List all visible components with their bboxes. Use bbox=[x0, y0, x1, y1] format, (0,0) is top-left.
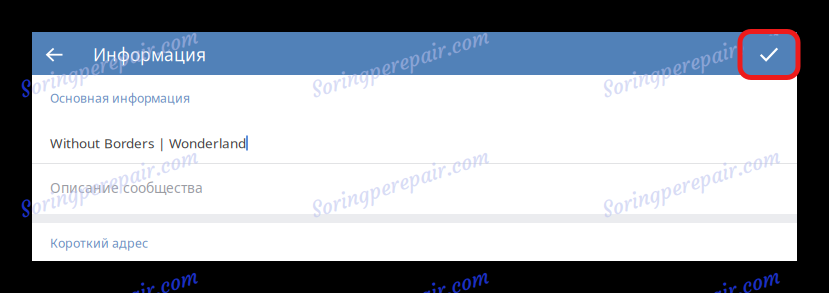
staticText: Soringperepair.com bbox=[16, 49, 201, 77]
staticText: Soringperepair.com bbox=[16, 169, 201, 197]
staticText: Soringperepair.com bbox=[598, 49, 783, 77]
staticText: Soringperepair.com bbox=[307, 169, 492, 197]
button[interactable]: Короткий адрес bbox=[50, 225, 797, 261]
button[interactable]: Основная информация bbox=[50, 85, 797, 111]
staticText: Информация bbox=[93, 43, 206, 66]
staticText: Основная информация bbox=[50, 90, 190, 106]
staticText: Soringperepair.com bbox=[598, 289, 783, 293]
button[interactable]: Save bbox=[740, 31, 798, 77]
staticText: Soringperepair.com bbox=[598, 169, 783, 197]
staticText: Soringperepair.com bbox=[598, 289, 783, 293]
staticText: Soringperepair.com bbox=[307, 289, 492, 293]
staticText: Короткий адрес bbox=[50, 235, 148, 251]
staticText: Soringperepair.com bbox=[307, 169, 492, 197]
button[interactable]: Back bbox=[33, 33, 77, 76]
staticText: Soringperepair.com bbox=[16, 49, 201, 77]
staticText: Soringperepair.com bbox=[307, 289, 492, 293]
staticText: Soringperepair.com bbox=[598, 49, 783, 77]
button[interactable]: Описание сообщества bbox=[50, 168, 797, 206]
staticText: Without Borders | Wonderland bbox=[50, 134, 246, 152]
staticText: Soringperepair.com bbox=[307, 49, 492, 77]
staticText: Soringperepair.com bbox=[16, 289, 201, 293]
staticText: Soringperepair.com bbox=[16, 169, 201, 197]
button[interactable]: Without Borders | Wonderland bbox=[50, 124, 797, 162]
staticText: Описание сообщества bbox=[50, 178, 203, 197]
staticText: Soringperepair.com bbox=[16, 289, 201, 293]
staticText: Soringperepair.com bbox=[307, 49, 492, 77]
staticText: Soringperepair.com bbox=[598, 169, 783, 197]
